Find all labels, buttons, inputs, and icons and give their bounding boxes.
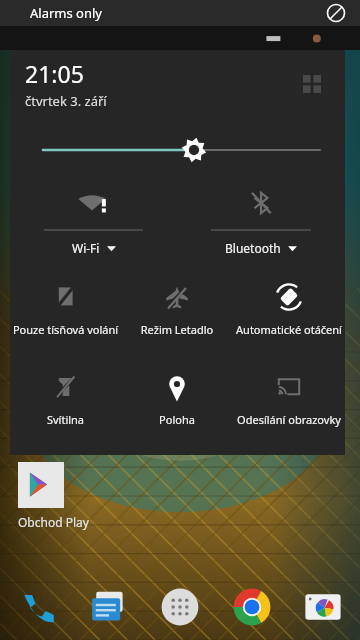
staticText: Poloha bbox=[123, 412, 231, 427]
button[interactable]: Automatické otáčení bbox=[233, 272, 345, 362]
button[interactable]: Chrome bbox=[229, 584, 275, 630]
button[interactable]: Svítilna bbox=[10, 362, 121, 452]
staticText: Alarms only bbox=[30, 4, 102, 22]
button[interactable]: Wi-Fi bbox=[10, 180, 177, 272]
button[interactable]: Bluetooth bbox=[177, 180, 345, 272]
button[interactable]: Poloha bbox=[121, 362, 233, 452]
button[interactable]: All apps bbox=[157, 584, 203, 630]
staticText: Svítilna bbox=[12, 412, 119, 427]
button[interactable]: Phone bbox=[14, 584, 60, 630]
staticText: Režim Letadlo bbox=[123, 322, 231, 337]
staticText: čtvrtek 3. září bbox=[25, 92, 107, 110]
staticText: Pouze tísňová volání bbox=[12, 322, 119, 337]
button[interactable]: Camera bbox=[300, 584, 346, 630]
button[interactable]: Settings grid bbox=[299, 71, 325, 97]
button[interactable]: Pouze tísňová volání bbox=[10, 272, 121, 362]
staticText: Obchod Play bbox=[18, 514, 89, 530]
button[interactable]: Brightness bbox=[10, 128, 345, 172]
button[interactable]: Režim Letadlo bbox=[121, 272, 233, 362]
other: Do not disturb bbox=[326, 3, 346, 23]
button[interactable]: Odesílání obrazovky bbox=[233, 362, 345, 452]
staticText: Automatické otáčení bbox=[235, 322, 343, 337]
staticText: Odesílání obrazovky bbox=[235, 412, 343, 427]
staticText: Bluetooth bbox=[225, 240, 281, 256]
staticText: 21:05 bbox=[25, 58, 84, 89]
staticText: Wi-Fi bbox=[72, 240, 100, 256]
button[interactable]: Messages bbox=[86, 584, 132, 630]
